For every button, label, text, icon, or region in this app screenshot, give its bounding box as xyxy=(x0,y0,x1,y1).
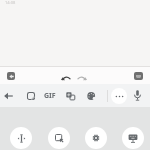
button[interactable] xyxy=(122,127,144,149)
button[interactable] xyxy=(87,92,96,100)
staticText: 14:08 xyxy=(5,0,16,5)
button[interactable] xyxy=(133,90,142,102)
button[interactable] xyxy=(48,127,70,149)
button[interactable] xyxy=(10,127,32,149)
button[interactable] xyxy=(61,75,71,82)
button[interactable] xyxy=(27,92,35,100)
button[interactable] xyxy=(66,92,75,100)
button[interactable] xyxy=(4,92,14,100)
button[interactable] xyxy=(85,127,107,149)
button[interactable] xyxy=(77,75,87,82)
button[interactable]: GIF xyxy=(42,90,57,101)
staticText: GIF xyxy=(44,91,56,101)
button[interactable] xyxy=(134,72,143,80)
button[interactable] xyxy=(7,72,15,80)
button[interactable] xyxy=(111,88,127,104)
